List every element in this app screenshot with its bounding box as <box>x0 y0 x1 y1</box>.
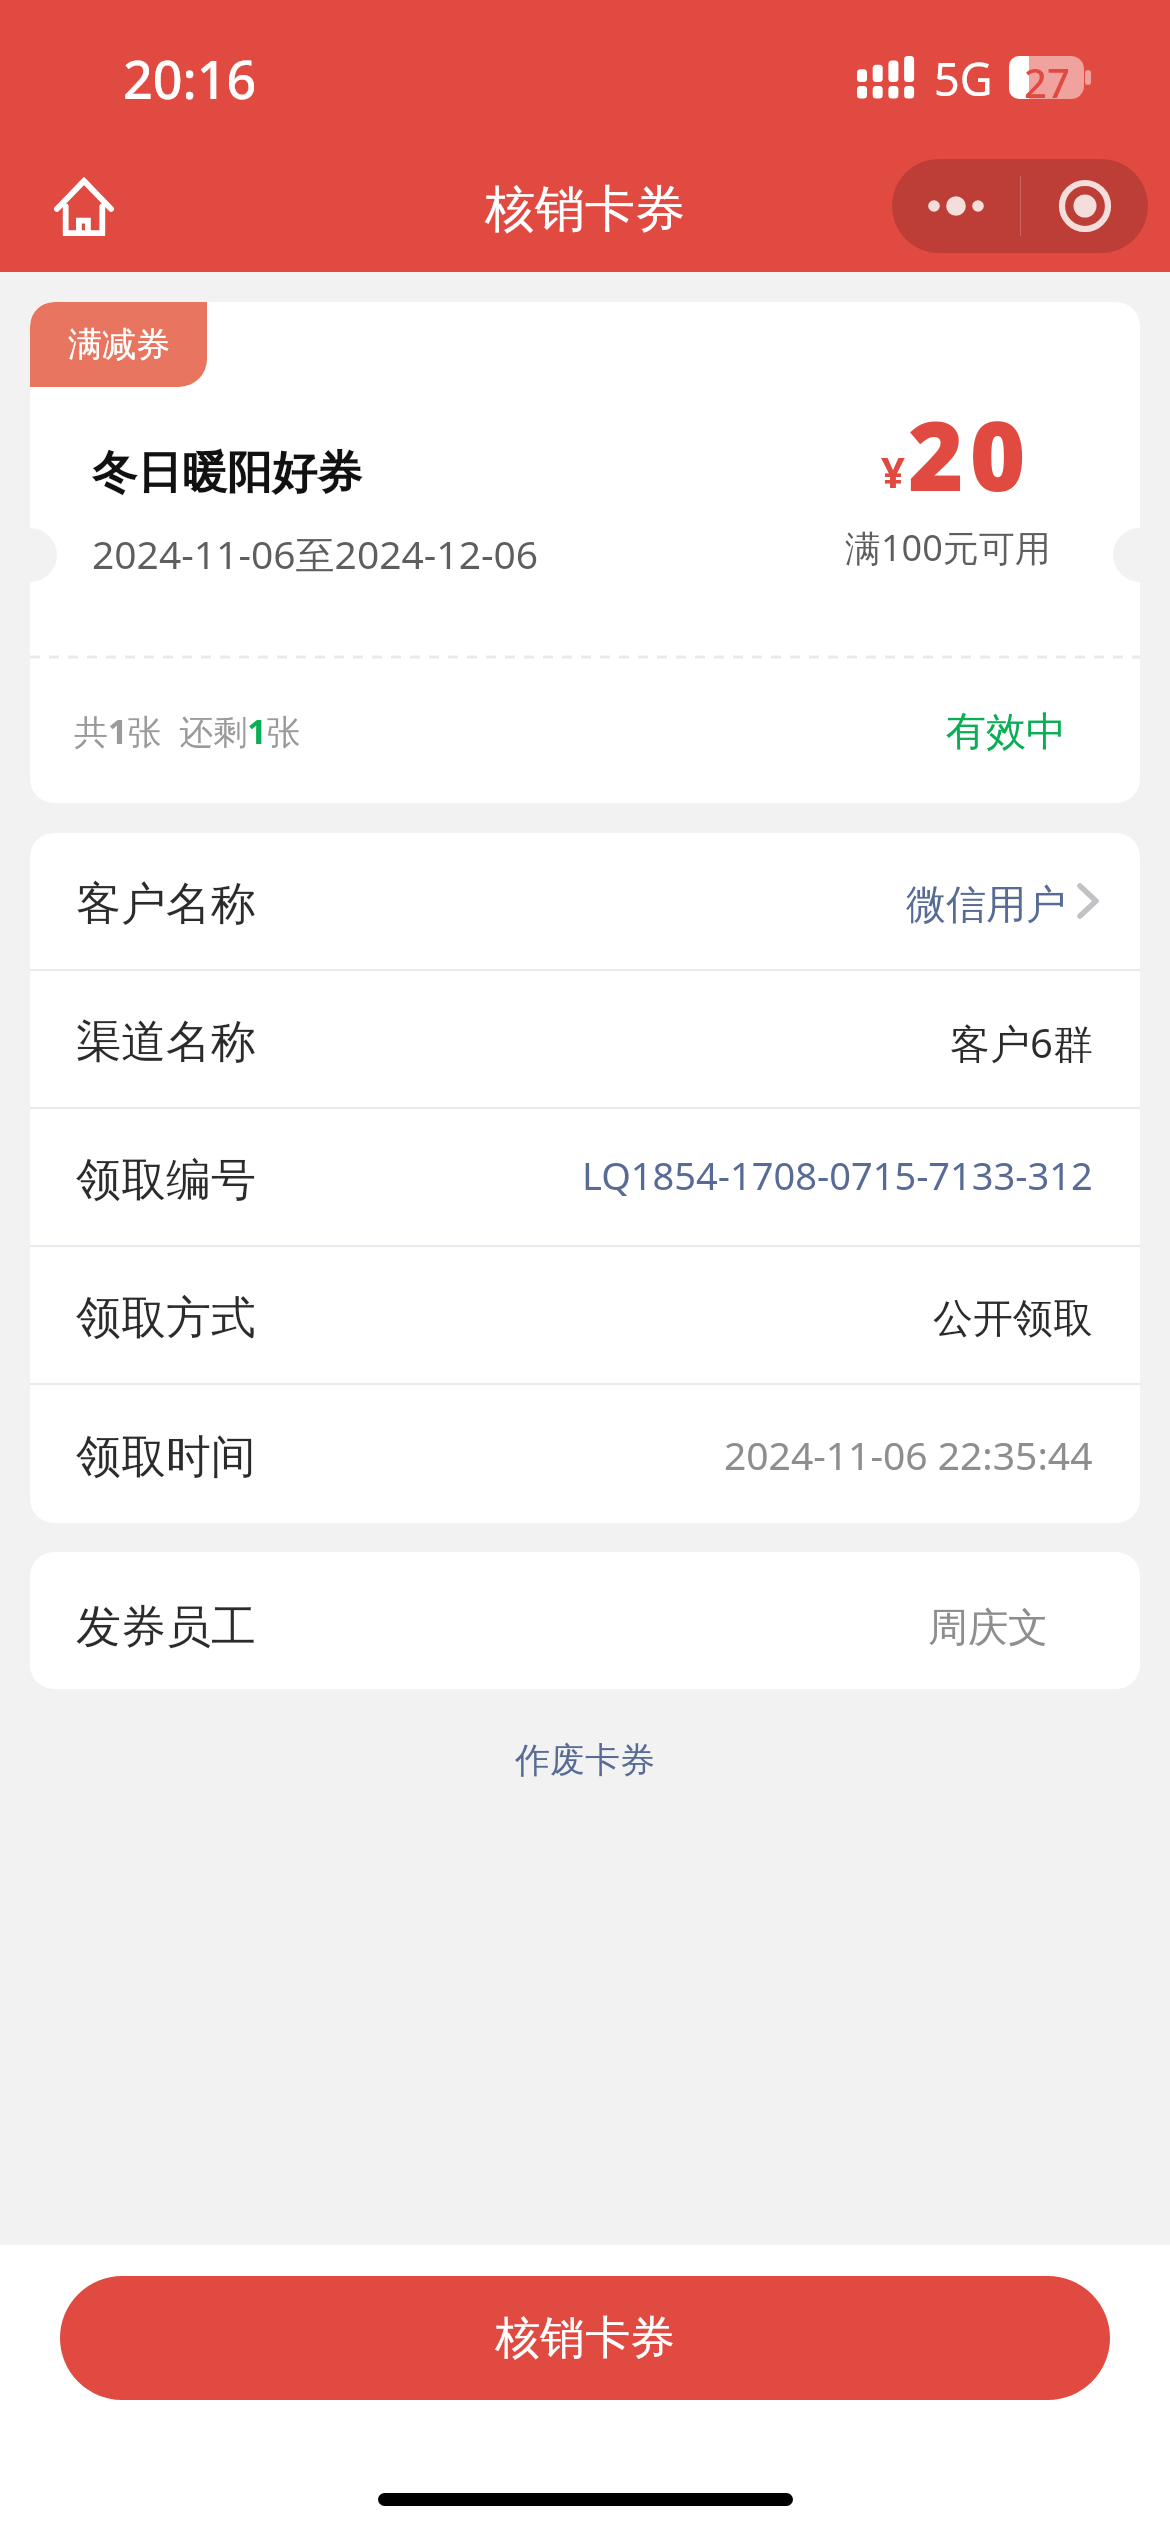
button[interactable]: 领取时间 <box>30 1385 1140 1523</box>
staticText: 发券员工 <box>76 1599 256 1656</box>
staticText: 领取方式 <box>76 1290 256 1347</box>
button[interactable]: 领取编号 <box>30 1109 1140 1245</box>
button[interactable]: 作废卡券 <box>455 1720 715 1800</box>
staticText: 客户6群 <box>950 1015 1093 1070</box>
staticText: 27 <box>1024 55 1070 98</box>
button[interactable]: 渠道名称 <box>30 971 1140 1107</box>
staticText: 2024-11-06至2024-12-06 <box>92 527 539 580</box>
staticText: 领取编号 <box>76 1152 256 1209</box>
button[interactable]: 客户名称 <box>30 833 1140 969</box>
button[interactable]: 发券员工 <box>30 1552 1140 1689</box>
staticText: 冬日暖阳好券 <box>92 445 362 502</box>
staticText: 渠道名称 <box>76 1014 256 1071</box>
staticText: 有效中 <box>946 706 1066 756</box>
staticText: 20:16 <box>123 43 257 114</box>
staticText: 共1张 还剩1张 <box>74 708 301 754</box>
staticText: 核销卡券 <box>495 2310 675 2367</box>
staticText: 周庆文 <box>928 1602 1048 1652</box>
staticText: 客户名称 <box>76 876 256 933</box>
staticText: 核销卡券 <box>485 178 685 241</box>
staticText: 5G <box>934 48 993 109</box>
button[interactable]: Home <box>24 147 144 267</box>
button[interactable]: Close mini program <box>1021 159 1148 253</box>
staticText: 20 <box>908 389 1032 518</box>
staticText: 满减券 <box>68 323 170 366</box>
button[interactable]: More <box>892 159 1020 253</box>
staticText: 公开领取 <box>933 1293 1093 1343</box>
staticText: 满100元可用 <box>845 523 1051 572</box>
staticText: 微信用户 <box>906 879 1066 929</box>
staticText: 作废卡券 <box>515 1738 655 1782</box>
staticText: ¥ <box>881 443 906 500</box>
staticText: LQ1854-1708-0715-7133-312 <box>582 1149 1093 1201</box>
button[interactable]: 核销卡券 <box>60 2276 1110 2400</box>
staticText: 2024-11-06 22:35:44 <box>724 1428 1093 1481</box>
staticText: 领取时间 <box>76 1429 256 1486</box>
button[interactable]: 领取方式 <box>30 1247 1140 1383</box>
